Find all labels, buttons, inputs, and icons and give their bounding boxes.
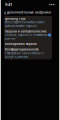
- button[interactable]: Samsung Pass: [4, 16, 52, 29]
- staticText: Используйте биометрические данные вместо…: [5, 20, 44, 28]
- staticText: ‹: [4, 8, 6, 17]
- staticText: Блокировка экрана: [5, 42, 37, 46]
- staticText: •••: [49, 2, 55, 7]
- staticText: 9:41: [5, 2, 12, 7]
- staticText: Логины, пароли и платёжные данные: [5, 33, 47, 40]
- staticText: Конфиденциальность: [5, 48, 39, 51]
- staticText: Разрешения приложений и доступ к данным: [5, 51, 44, 58]
- button[interactable]: Конфиденциальность: [4, 47, 52, 59]
- button[interactable]: ‹: [0, 9, 60, 16]
- staticText: Дополнительные настройки: [7, 11, 51, 14]
- staticText: Samsung Pass: [5, 17, 25, 20]
- staticText: Пароли и автозаполнение: [5, 30, 47, 33]
- button[interactable]: Пароли и автозаполнение: [4, 29, 52, 41]
- button[interactable]: Блокировка экрана: [4, 41, 52, 47]
